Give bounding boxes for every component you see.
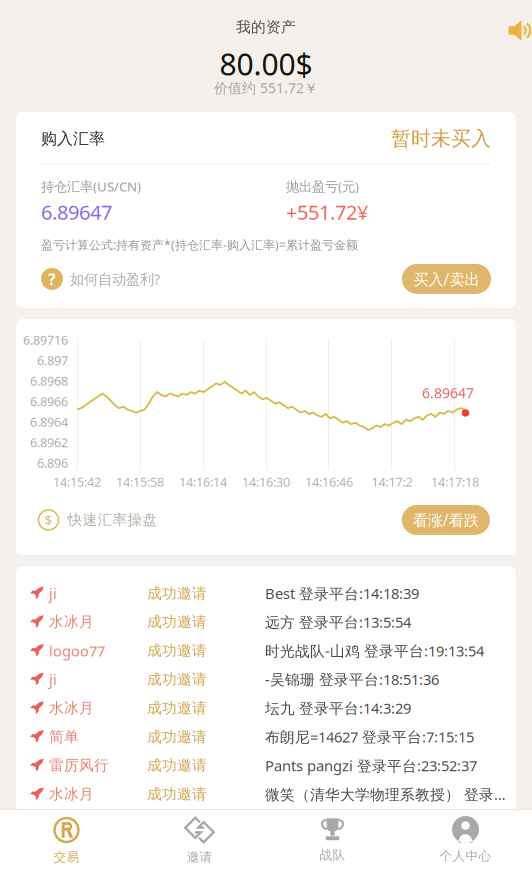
staticText: 水冰月	[49, 699, 94, 717]
staticText: 坛九 登录平台:14:3:29	[265, 698, 411, 718]
button[interactable]: 个人中心	[399, 810, 532, 870]
staticText: 14:15:42	[53, 473, 101, 491]
staticText: 6.8966	[30, 393, 68, 410]
staticText: 微笑（清华大学物理系教授） 登录…	[265, 784, 506, 804]
staticText: Pants pangzi 登录平台:23:52:37	[265, 755, 477, 775]
staticText: 购入汇率	[41, 128, 105, 149]
staticText: 成功邀请	[147, 727, 207, 746]
staticText: 远方 登录平台:13:5:54	[265, 612, 411, 632]
staticText: 暂时未买入	[391, 126, 491, 151]
staticText: 快速汇率操盘	[67, 511, 157, 529]
staticText: 14:16:30	[242, 473, 290, 491]
button[interactable]: Announcements	[494, 9, 532, 52]
staticText: 成功邀请	[147, 613, 207, 631]
staticText: 水冰月	[49, 785, 94, 803]
staticText: 盈亏计算公式:持有资产*(持仓汇率-购入汇率)=累计盈亏金额	[41, 237, 358, 253]
button[interactable]: ?	[41, 265, 160, 293]
staticText: 战队	[319, 847, 345, 863]
button[interactable]: 战队	[266, 810, 399, 870]
button[interactable]: 看涨/看跌	[402, 505, 490, 535]
staticText: 水冰月	[49, 613, 94, 631]
staticText: 6.896	[37, 454, 68, 472]
staticText: 6.89647	[41, 198, 112, 226]
button[interactable]: $	[36, 504, 159, 536]
staticText: 成功邀请	[147, 756, 207, 775]
staticText: 时光战队-山鸡 登录平台:19:13:54	[265, 641, 484, 661]
staticText: 成功邀请	[147, 699, 207, 717]
staticText: 价值约 551.72￥	[214, 78, 318, 97]
staticText: 6.8962	[30, 434, 68, 451]
staticText: Best 登录平台:14:18:39	[265, 583, 419, 603]
staticText: 雷厉风行	[49, 756, 109, 775]
button[interactable]: 邀请	[133, 810, 266, 870]
staticText: 6.8964	[30, 413, 68, 431]
staticText: 成功邀请	[147, 670, 207, 689]
staticText: 14:17:2	[371, 473, 412, 491]
staticText: $	[44, 511, 52, 529]
button[interactable]: 买入/卖出	[402, 264, 491, 294]
staticText: 6.89716	[23, 331, 68, 349]
button[interactable]: 交易	[0, 810, 133, 870]
staticText: 看涨/看跌	[413, 509, 479, 530]
staticText: 我的资产	[236, 18, 296, 36]
staticText: 抛出盈亏(元)	[286, 177, 359, 195]
staticText: logoo77	[49, 641, 105, 661]
staticText: 14:17:18	[431, 473, 479, 491]
staticText: -吴锦珊 登录平台:18:51:36	[265, 669, 439, 689]
staticText: ?	[48, 268, 56, 290]
staticText: ji	[49, 583, 57, 603]
staticText: 持仓汇率(US/CN)	[41, 177, 141, 195]
staticText: 如何自动盈利?	[70, 269, 160, 289]
staticText: 邀请	[186, 849, 212, 865]
staticText: 14:16:46	[305, 473, 353, 491]
staticText: 成功邀请	[147, 785, 207, 803]
staticText: 简单	[49, 727, 79, 746]
staticText: 6.89647	[422, 383, 474, 402]
staticText: 个人中心	[439, 848, 491, 864]
staticText: 14:16:14	[179, 473, 227, 491]
staticText: ji	[49, 669, 57, 689]
staticText: 6.8968	[30, 372, 68, 390]
staticText: 交易	[53, 849, 79, 865]
staticText: +551.72¥	[286, 198, 368, 226]
staticText: 买入/卖出	[413, 268, 479, 289]
staticText: 80.00$	[219, 43, 312, 84]
staticText: 14:15:58	[116, 473, 164, 491]
staticText: 6.897	[37, 352, 68, 369]
staticText: 布朗尼=14627 登录平台:7:15:15	[265, 727, 474, 747]
staticText: 成功邀请	[147, 584, 207, 602]
staticText: 成功邀请	[147, 641, 207, 660]
